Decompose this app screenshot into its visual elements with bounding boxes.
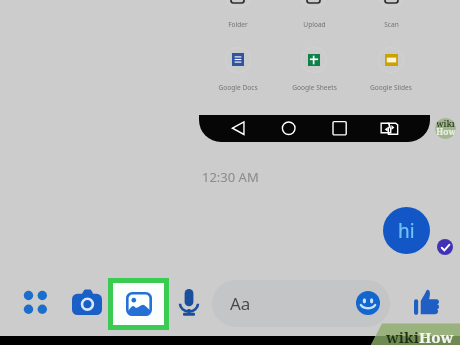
staticText: Google Docs [218,83,258,92]
staticText: How [419,327,454,345]
button[interactable]: Google Sheets [308,54,320,66]
button[interactable]: hi [383,207,430,254]
staticText: Google Slides [370,83,412,92]
staticText: wiki [436,118,455,130]
button[interactable]: Folder [231,0,244,3]
staticText: hi [398,218,415,244]
staticText: Aa [230,292,251,315]
staticText: Scan [384,20,399,29]
button[interactable]: Gallery [113,283,164,325]
button[interactable]: Camera [72,289,102,315]
staticText: Folder [228,20,248,29]
button[interactable]: Google Docs [232,53,244,66]
staticText: Google Sheets [292,83,337,92]
staticText: wiki [386,327,419,345]
button[interactable]: Upload [307,0,320,3]
button[interactable]: Like [414,288,440,316]
other: Message sent [437,239,453,255]
staticText: Upload [303,20,326,29]
staticText: How [436,126,456,138]
button[interactable]: Voice message [179,289,199,316]
button[interactable]: Scan [385,0,398,3]
staticText: 12:30 AM [202,168,259,186]
button[interactable]: More options [21,288,50,317]
button[interactable]: Google Slides [385,54,398,66]
button[interactable]: Aa [212,280,390,327]
button[interactable]: Emoji [356,291,380,315]
